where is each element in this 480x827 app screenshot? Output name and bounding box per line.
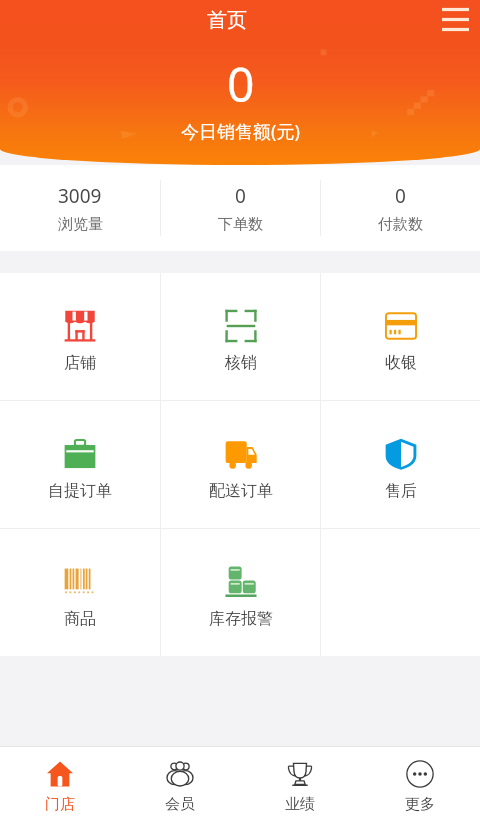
button[interactable]: 核销 [161,273,320,400]
staticText: 门店 [45,795,75,814]
staticText: 今日销售额(元) [181,119,300,144]
staticText: 售后 [385,481,417,501]
staticText: 首页 [207,8,247,33]
staticText: 核销 [225,353,257,373]
staticText: 下单数 [218,215,263,234]
staticText: 0 [395,183,406,209]
staticText: 库存报警 [209,609,273,629]
button[interactable]: 配送订单 [161,401,320,528]
button[interactable]: 商品 [0,529,160,656]
button[interactable]: 3009 [0,165,160,251]
button[interactable]: 自提订单 [0,401,160,528]
staticText: 付款数 [378,215,423,234]
button[interactable]: 收银 [321,273,480,400]
button[interactable]: 会员 [120,747,240,827]
staticText: 收银 [385,353,417,373]
staticText: 0 [235,183,246,209]
staticText: 店铺 [64,353,96,373]
button[interactable]: 售后 [321,401,480,528]
staticText: 商品 [64,609,96,629]
staticText: 自提订单 [48,481,112,501]
button[interactable]: 库存报警 [161,529,320,656]
staticText: 会员 [165,795,195,814]
button[interactable]: 门店 [0,747,120,827]
staticText: 业绩 [285,795,315,814]
button[interactable]: Menu [432,0,476,40]
staticText: 浏览量 [58,215,103,234]
button[interactable]: 店铺 [0,273,160,400]
button[interactable]: 0 [161,165,320,251]
button[interactable]: 0 [321,165,480,251]
button[interactable]: 更多 [360,747,480,827]
button[interactable]: 业绩 [240,747,360,827]
staticText: 配送订单 [209,481,273,501]
staticText: 0 [227,51,255,116]
staticText: 更多 [405,795,435,814]
staticText: 3009 [58,183,102,209]
